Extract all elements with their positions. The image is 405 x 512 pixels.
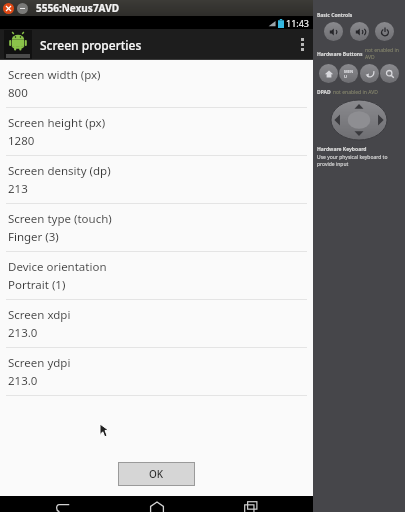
staticText: 1280 xyxy=(8,133,35,149)
button[interactable]: Minimize window xyxy=(17,3,28,14)
button[interactable]: OK xyxy=(119,463,194,485)
staticText: Basic Controls xyxy=(317,12,353,19)
button[interactable]: Volume up xyxy=(350,22,369,41)
staticText: DPAD xyxy=(317,89,331,96)
staticText: 5556:Nexus7AVD xyxy=(36,1,119,15)
staticText: 213.0 xyxy=(8,373,38,389)
button[interactable]: Search xyxy=(380,64,399,83)
staticText: Screen width (px) xyxy=(8,67,101,83)
staticText: Screen height (px) xyxy=(8,115,106,131)
staticText: Screen density (dp) xyxy=(8,163,111,179)
button[interactable]: More options xyxy=(291,29,313,60)
button[interactable]: Back xyxy=(360,64,379,83)
button[interactable]: D-Pad xyxy=(331,100,387,140)
button[interactable]: Close window xyxy=(3,3,14,14)
staticText: MENU xyxy=(344,69,354,79)
button[interactable]: Home xyxy=(319,64,338,83)
button[interactable]: Power xyxy=(375,22,394,41)
button[interactable]: Menu xyxy=(339,64,358,83)
staticText: Portrait (1) xyxy=(8,277,66,293)
button[interactable]: Screen height (px) xyxy=(0,108,313,155)
staticText: Screen ydpi xyxy=(8,355,71,371)
staticText: Hardware Buttons xyxy=(317,51,363,58)
staticText: not enabled in AVD xyxy=(365,47,401,61)
staticText: OK xyxy=(149,467,164,481)
staticText: Screen xdpi xyxy=(8,307,71,323)
staticText: Hardware Keyboard xyxy=(317,146,367,153)
staticText: Use your physical keyboard to provide in… xyxy=(317,154,401,168)
button[interactable]: Screen density (dp) xyxy=(0,156,313,203)
button[interactable]: Screen ydpi xyxy=(0,348,313,395)
staticText: not enabled in AVD xyxy=(333,89,378,96)
button[interactable]: Screen type (touch) xyxy=(0,204,313,251)
staticText: Screen type (touch) xyxy=(8,211,112,227)
button[interactable]: Screen xdpi xyxy=(0,300,313,347)
staticText: Device orientation xyxy=(8,259,107,275)
button[interactable]: Volume down xyxy=(324,22,343,41)
button[interactable]: Screen width (px) xyxy=(0,60,313,107)
button[interactable]: Back xyxy=(30,496,94,512)
staticText: Screen properties xyxy=(40,37,142,53)
button[interactable]: App icon xyxy=(4,30,32,59)
staticText: Finger (3) xyxy=(8,229,59,245)
staticText: 11:43 xyxy=(286,17,310,29)
staticText: 213.0 xyxy=(8,325,38,341)
button[interactable]: Recent apps xyxy=(219,496,283,512)
staticText: 213 xyxy=(8,181,28,197)
staticText: 800 xyxy=(8,85,28,101)
button[interactable]: Device orientation xyxy=(0,252,313,299)
button[interactable]: Home xyxy=(125,496,189,512)
